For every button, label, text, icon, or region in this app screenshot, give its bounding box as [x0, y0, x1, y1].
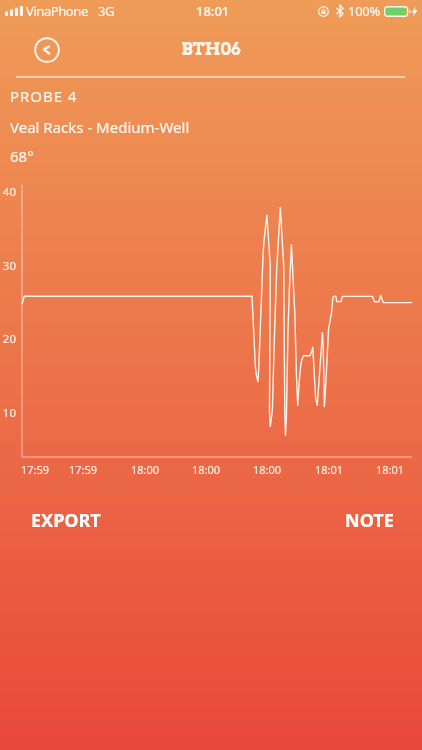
staticText: 18:01: [370, 462, 410, 477]
staticText: NOTE: [345, 508, 394, 528]
staticText: 100%: [348, 2, 381, 20]
staticText: 18:01: [196, 2, 230, 20]
staticText: BTH06: [0, 39, 422, 60]
staticText: 40: [0, 184, 16, 200]
staticText: PROBE 4: [10, 86, 78, 106]
staticText: 17:59: [63, 462, 103, 477]
staticText: VinaPhone: [26, 2, 88, 20]
staticText: Veal Racks - Medium-Well: [10, 117, 190, 137]
staticText: 20: [0, 331, 16, 347]
staticText: EXPORT: [31, 508, 101, 528]
staticText: 10: [0, 405, 16, 421]
staticText: 18:01: [309, 462, 349, 477]
staticText: 30: [0, 258, 16, 274]
staticText: 68°: [10, 146, 34, 166]
button[interactable]: Back: [34, 37, 60, 63]
staticText: 18:00: [125, 462, 165, 477]
staticText: 17:59: [15, 462, 55, 477]
staticText: 18:00: [186, 462, 226, 477]
staticText: 18:00: [247, 462, 287, 477]
button[interactable]: NOTE: [335, 501, 404, 535]
staticText: 3G: [98, 2, 115, 20]
button[interactable]: EXPORT: [21, 501, 111, 535]
